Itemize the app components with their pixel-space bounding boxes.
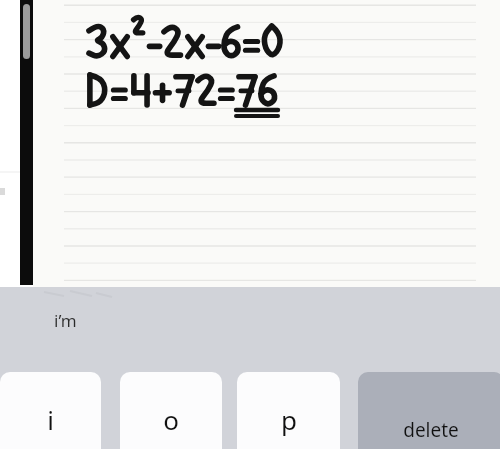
staticText: p <box>281 402 297 437</box>
staticText: delete <box>403 417 459 443</box>
staticText: i’m <box>54 309 77 332</box>
button[interactable]: i <box>0 372 101 449</box>
button[interactable]: o <box>120 372 222 449</box>
staticText: i <box>47 402 54 437</box>
staticText: o <box>163 402 179 437</box>
button[interactable]: i’m <box>40 305 94 335</box>
button[interactable]: p <box>237 372 340 449</box>
button[interactable]: delete <box>358 372 500 449</box>
